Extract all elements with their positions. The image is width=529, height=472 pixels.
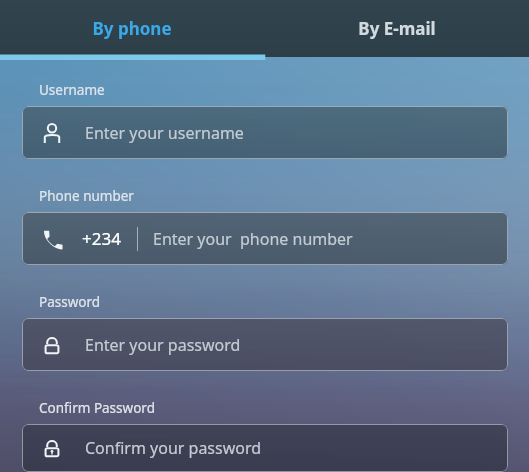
- other: Username: [40, 121, 64, 145]
- staticText: Enter your phone number: [153, 228, 353, 250]
- staticText: Password: [39, 293, 101, 311]
- staticText: +234: [82, 227, 121, 250]
- button[interactable]: Phone number: [22, 212, 508, 265]
- staticText: Confirm Password: [39, 399, 155, 417]
- other: Confirm Password: [40, 436, 64, 460]
- staticText: Username: [39, 81, 105, 99]
- staticText: By phone: [92, 17, 172, 40]
- staticText: Confirm your password: [85, 437, 262, 459]
- staticText: By E-mail: [358, 17, 436, 40]
- button[interactable]: Username: [22, 106, 508, 159]
- button[interactable]: Password: [22, 318, 508, 371]
- staticText: Phone number: [39, 187, 134, 205]
- button[interactable]: By E-mail: [264, 0, 529, 57]
- staticText: Enter your password: [85, 334, 241, 356]
- other: Phone number: [40, 227, 64, 251]
- button[interactable]: By phone: [0, 0, 264, 57]
- staticText: Enter your username: [85, 122, 244, 144]
- other: Password: [40, 333, 64, 357]
- button[interactable]: Confirm Password: [22, 424, 508, 472]
